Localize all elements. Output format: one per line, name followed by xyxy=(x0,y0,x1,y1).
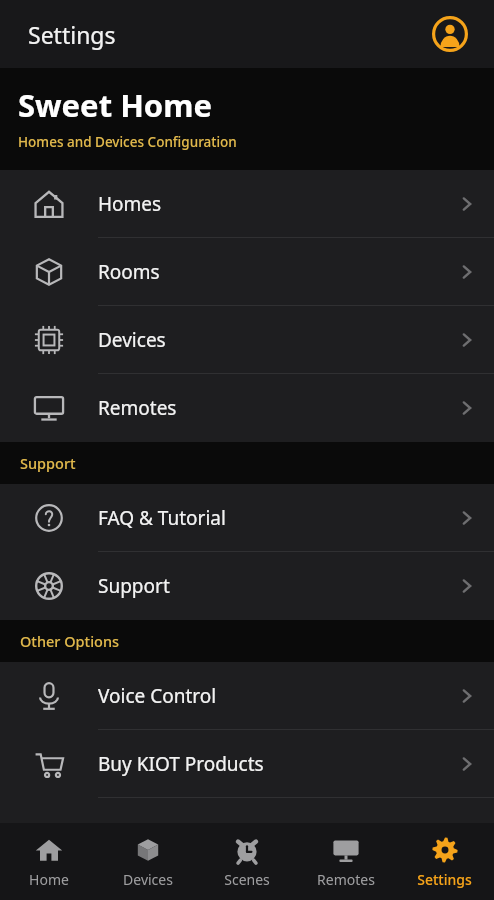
staticText: Settings xyxy=(417,870,472,889)
button[interactable]: Remotes xyxy=(296,823,395,900)
staticText: Scenes xyxy=(224,870,270,889)
button[interactable]: Home xyxy=(0,823,98,900)
staticText: Settings xyxy=(28,19,116,50)
button[interactable]: Remotes xyxy=(0,374,494,442)
staticText: Remotes xyxy=(317,870,375,889)
staticText: Buy KIOT Products xyxy=(98,751,440,777)
button[interactable]: Voice Control xyxy=(0,662,494,730)
button[interactable]: Support xyxy=(0,552,494,620)
staticText: FAQ & Tutorial xyxy=(98,505,440,531)
staticText: Homes xyxy=(98,191,440,217)
staticText: Other Options xyxy=(20,631,120,651)
button[interactable]: Buy KIOT Products xyxy=(0,730,494,798)
staticText: Support xyxy=(20,453,76,473)
button[interactable]: Account xyxy=(428,12,472,56)
button[interactable]: Devices xyxy=(0,306,494,374)
button[interactable]: Homes xyxy=(0,170,494,238)
staticText: Rooms xyxy=(98,259,440,285)
button[interactable]: FAQ & Tutorial xyxy=(0,484,494,552)
staticText: Support xyxy=(98,573,440,599)
staticText: Remotes xyxy=(98,395,440,421)
staticText: Voice Control xyxy=(98,683,440,709)
staticText: Homes and Devices Configuration xyxy=(18,133,237,151)
staticText: Devices xyxy=(98,327,440,353)
button[interactable]: Settings xyxy=(395,823,494,900)
staticText: Devices xyxy=(123,870,173,889)
staticText: Home xyxy=(29,870,69,889)
button[interactable]: Scenes xyxy=(197,823,296,900)
button[interactable]: Rooms xyxy=(0,238,494,306)
button[interactable]: Devices xyxy=(98,823,197,900)
staticText: Sweet Home xyxy=(18,84,212,126)
